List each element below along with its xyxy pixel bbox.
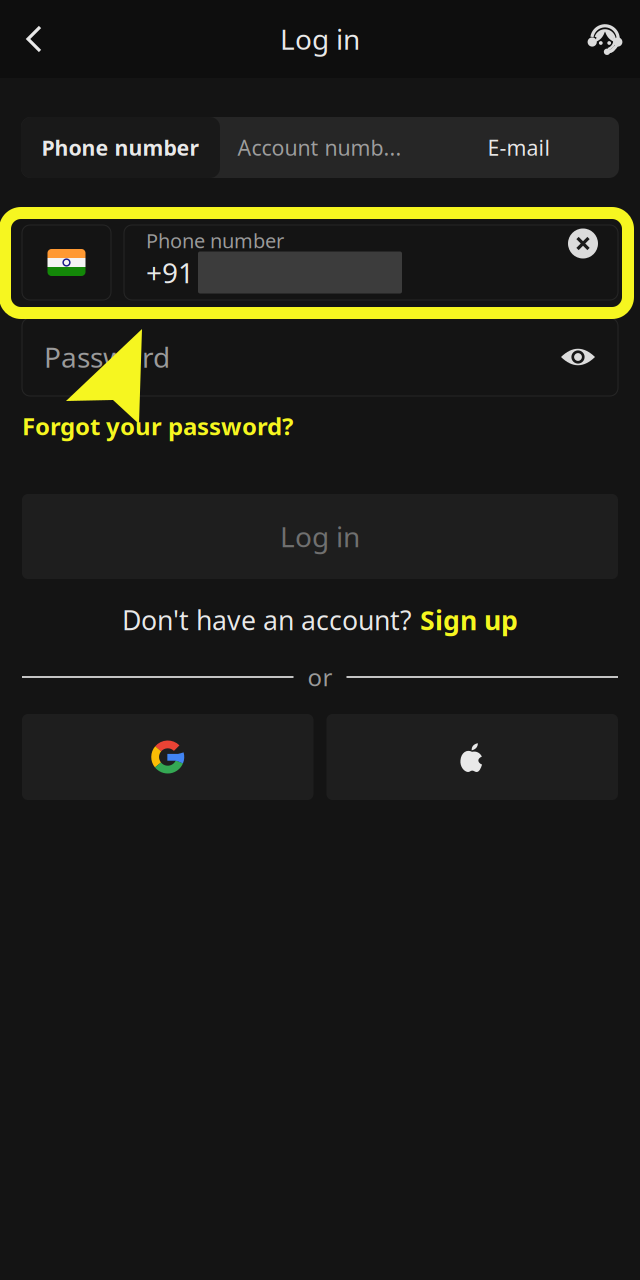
staticText: Log in — [280, 518, 360, 555]
staticText: Forgot your password? — [22, 410, 293, 442]
staticText: E-mail — [487, 133, 550, 162]
staticText: Log in — [280, 20, 360, 58]
button[interactable]: Customer support — [578, 12, 632, 66]
button[interactable]: Show password — [560, 344, 596, 370]
button[interactable]: Account numb... — [220, 117, 419, 178]
staticText: Phone number — [146, 227, 284, 254]
staticText: Phone number — [41, 133, 199, 162]
button[interactable]: Log in — [22, 494, 618, 579]
staticText: or — [307, 661, 332, 693]
button[interactable]: Back — [8, 12, 62, 66]
button[interactable]: Continue with Apple — [326, 714, 618, 800]
button[interactable]: Select country code — [22, 225, 111, 300]
button[interactable]: Don't have an account? — [122, 605, 518, 635]
staticText: +91 — [146, 254, 194, 291]
staticText: Password — [44, 338, 170, 376]
button[interactable]: Phone number — [21, 117, 220, 178]
button[interactable]: Continue with Google — [22, 714, 313, 800]
button[interactable]: E-mail — [419, 117, 619, 178]
staticText: Account numb... — [237, 133, 401, 162]
button[interactable]: Clear phone number — [568, 228, 598, 296]
staticText: Don't have an account? — [122, 602, 412, 638]
button[interactable]: Forgot your password? — [22, 412, 293, 440]
staticText: Sign up — [420, 602, 518, 638]
